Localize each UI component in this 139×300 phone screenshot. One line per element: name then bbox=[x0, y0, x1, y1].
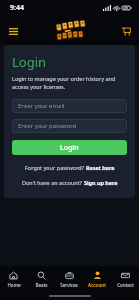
staticText: Login to manage your order history and a… bbox=[12, 75, 127, 91]
button[interactable]: Home bbox=[0, 271, 27, 288]
button[interactable]: Enter your password bbox=[12, 119, 127, 133]
staticText: Beats bbox=[35, 282, 48, 288]
button[interactable]: Beats bbox=[27, 271, 55, 288]
button[interactable]: Login bbox=[12, 140, 127, 155]
staticText: Enter your password bbox=[18, 122, 77, 130]
button[interactable]: Don't have an account? bbox=[12, 179, 127, 186]
staticText: Login bbox=[12, 53, 47, 71]
staticText: Login bbox=[60, 143, 79, 153]
staticText: Services bbox=[60, 282, 78, 288]
staticText: Forgot your password? bbox=[25, 164, 86, 171]
staticText: Account bbox=[88, 282, 106, 288]
button[interactable]: Menu bbox=[5, 23, 21, 39]
button[interactable]: Cart bbox=[118, 23, 134, 39]
staticText: Contact bbox=[117, 282, 134, 288]
button[interactable]: Services bbox=[55, 271, 83, 288]
staticText: Sign up here bbox=[84, 179, 118, 186]
staticText: Home bbox=[7, 282, 21, 288]
button[interactable]: Forgot your password? bbox=[12, 164, 127, 171]
button[interactable]: Enter your email bbox=[12, 99, 127, 113]
staticText: Don't have an account? bbox=[22, 179, 84, 186]
staticText: Reset here bbox=[86, 164, 115, 171]
staticText: Enter your email bbox=[18, 102, 65, 110]
button[interactable]: Account bbox=[83, 271, 111, 288]
staticText: 9:44 bbox=[10, 3, 24, 13]
button[interactable]: Contact bbox=[111, 271, 139, 288]
